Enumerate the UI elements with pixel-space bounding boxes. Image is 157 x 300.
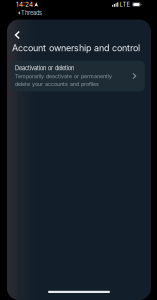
staticText: Threads bbox=[21, 10, 42, 16]
button[interactable]: Back bbox=[7, 28, 33, 41]
staticText: LTE bbox=[119, 1, 130, 8]
button[interactable]: Deactivation or deletion bbox=[11, 61, 145, 91]
button[interactable]: Threads bbox=[0, 9, 42, 17]
staticText: 14:24 bbox=[16, 1, 33, 8]
staticText: Account ownership and control bbox=[12, 42, 140, 53]
staticText: Deactivation or deletion bbox=[15, 65, 74, 72]
staticText: delete your accounts and profiles bbox=[15, 81, 99, 87]
staticText: Temporarily deactivate or permanently bbox=[15, 73, 112, 80]
